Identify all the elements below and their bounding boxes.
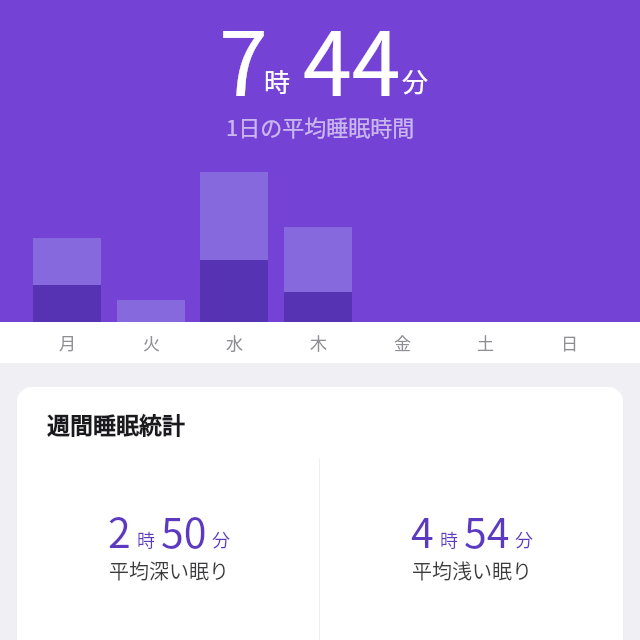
staticText: 金 (394, 330, 411, 355)
staticText: 時 (264, 62, 291, 100)
staticText: 時 (440, 526, 458, 552)
staticText: 50 (161, 500, 207, 559)
staticText: 44 (303, 0, 401, 121)
staticText: 7 (219, 0, 268, 121)
button[interactable]: 4 (320, 500, 623, 588)
staticText: 1日の平均睡眠時間 (226, 110, 415, 142)
staticText: 平均浅い眠り (412, 556, 532, 585)
staticText: 土 (477, 330, 494, 355)
staticText: 分 (212, 526, 230, 552)
staticText: 平均深い眠り (109, 556, 229, 585)
staticText: 54 (464, 500, 510, 559)
staticText: 木 (310, 330, 327, 355)
staticText: 分 (515, 526, 533, 552)
staticText: 4 (411, 500, 434, 559)
staticText: 分 (402, 62, 429, 100)
button[interactable]: 週間睡眠統計 (17, 387, 623, 640)
staticText: 水 (226, 330, 243, 355)
button[interactable]: 2 (17, 500, 320, 588)
staticText: 月 (59, 330, 76, 355)
staticText: 火 (143, 330, 160, 355)
staticText: 週間睡眠統計 (47, 407, 185, 440)
staticText: 日 (561, 330, 578, 355)
staticText: 2 (108, 500, 131, 559)
staticText: 時 (137, 526, 155, 552)
